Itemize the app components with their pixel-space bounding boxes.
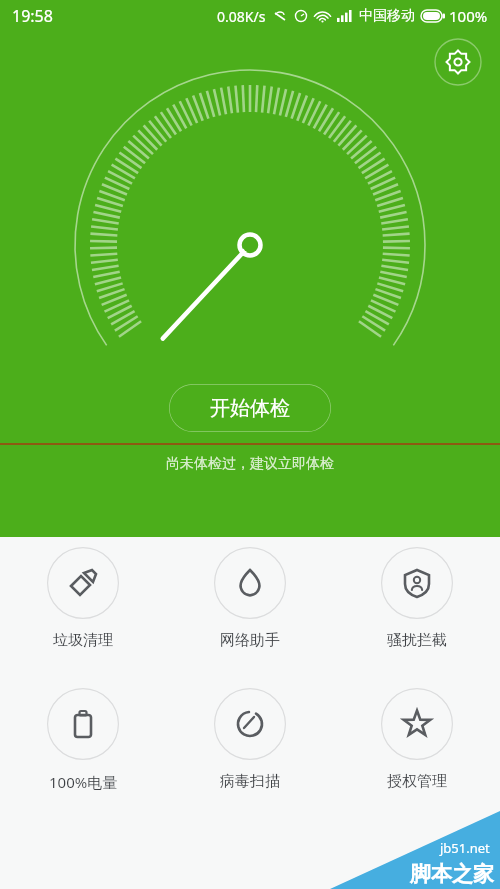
button[interactable]: 垃圾清理 xyxy=(18,543,148,654)
button[interactable]: 开始体检 xyxy=(169,384,331,432)
staticText: 尚未体检过，建议立即体检 xyxy=(166,455,334,473)
button[interactable]: 病毒扫描 xyxy=(185,684,315,795)
staticText: 开始体检 xyxy=(210,396,290,421)
staticText: 骚扰拦截 xyxy=(387,631,447,650)
staticText: 垃圾清理 xyxy=(53,631,113,650)
staticText: 0.08K/s xyxy=(217,7,266,26)
button[interactable]: 100%电量 xyxy=(18,684,148,796)
staticText: 授权管理 xyxy=(387,772,447,791)
staticText: 中国移动 xyxy=(359,7,415,25)
staticText: 病毒扫描 xyxy=(220,772,280,791)
button[interactable]: Settings xyxy=(434,38,482,86)
staticText: 19:58 xyxy=(12,5,53,27)
staticText: 网络助手 xyxy=(220,631,280,650)
button[interactable]: 网络助手 xyxy=(185,543,315,654)
staticText: jb51.net xyxy=(440,839,490,857)
staticText: 脚本之家 xyxy=(410,861,494,887)
button[interactable]: 骚扰拦截 xyxy=(352,543,482,654)
staticText: 100% xyxy=(449,6,488,26)
button[interactable]: 授权管理 xyxy=(352,684,482,795)
staticText: 100%电量 xyxy=(49,772,118,792)
